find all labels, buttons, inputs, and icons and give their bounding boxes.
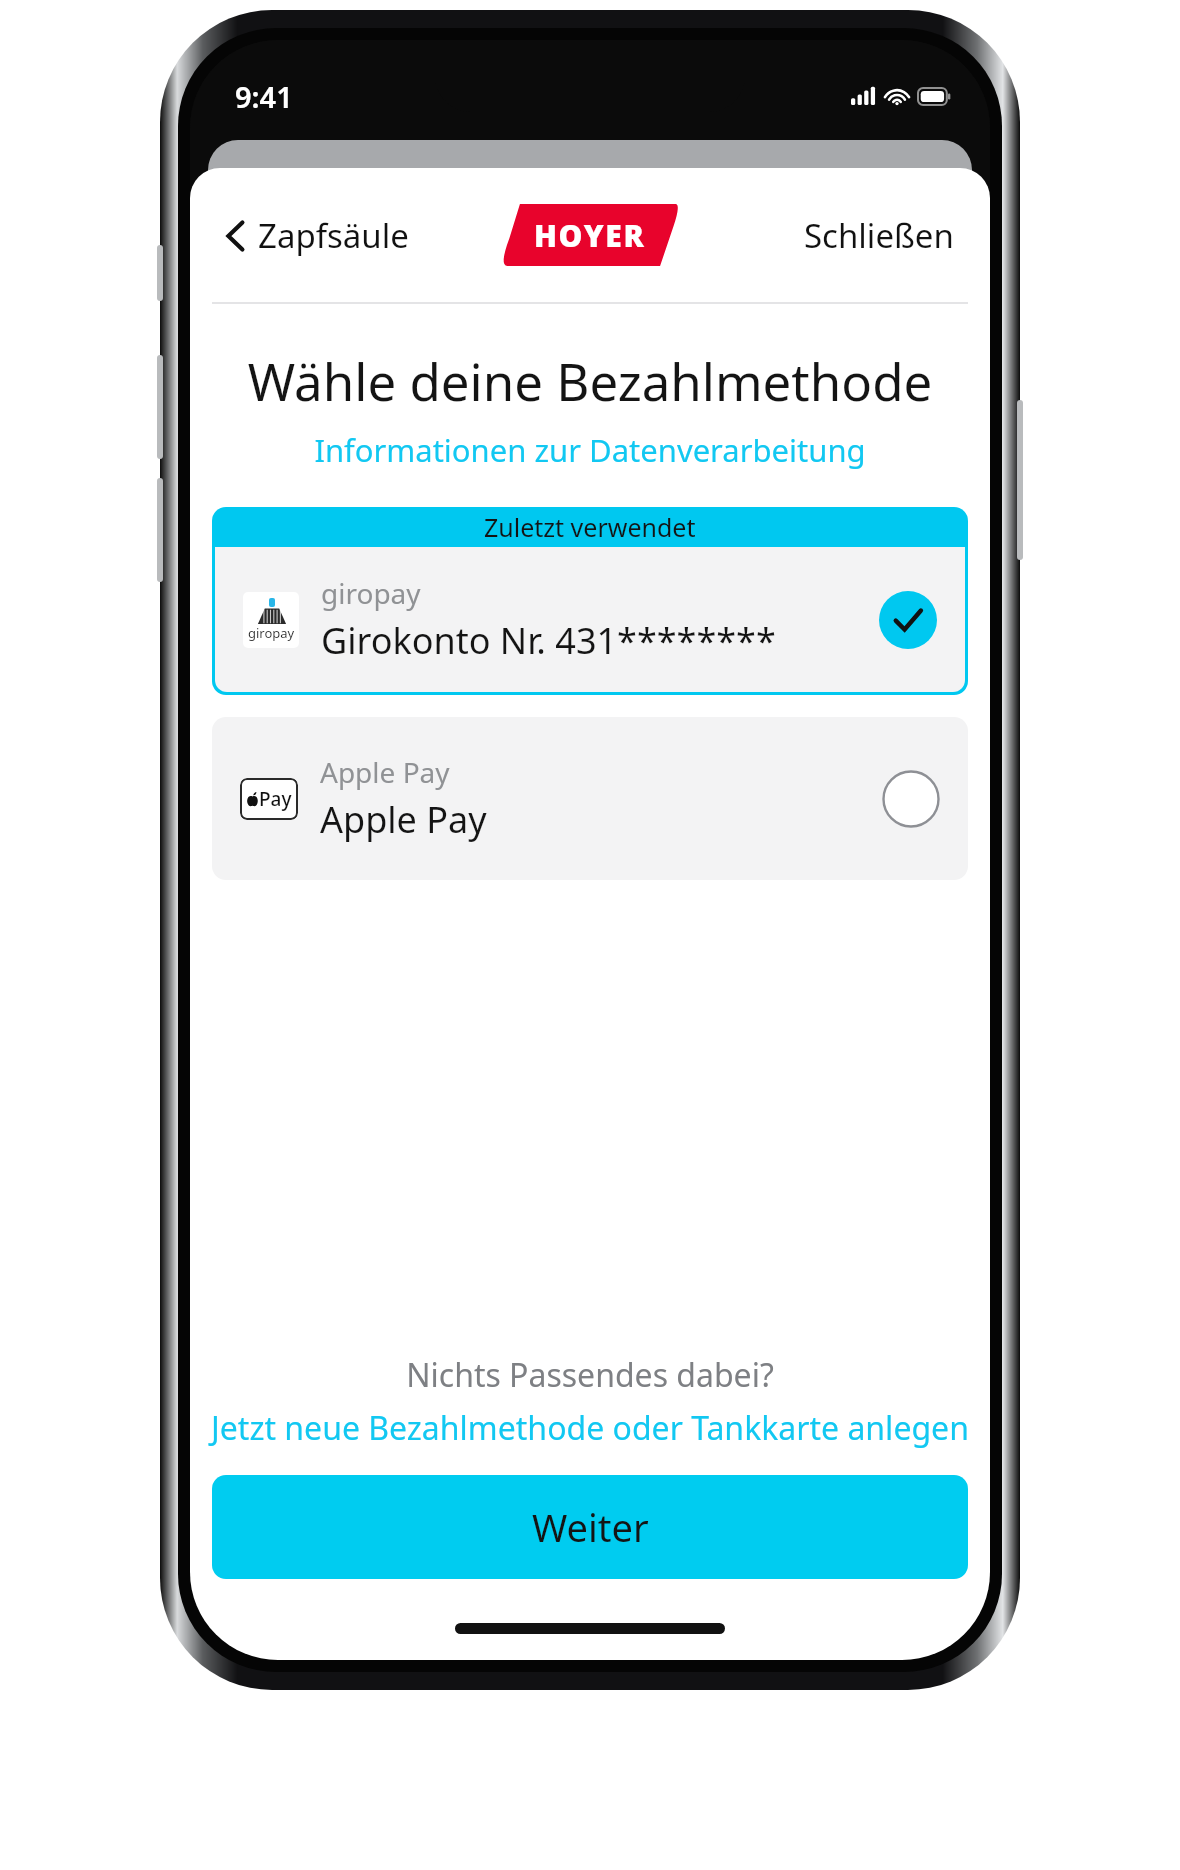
staticText: Schließen (804, 213, 954, 258)
button[interactable]: Informationen zur Datenverarbeitung (308, 425, 872, 475)
staticText: Apple Pay (320, 795, 487, 844)
staticText: Wähle deine Bezahlmethode (190, 346, 990, 415)
staticText: Nichts Passendes dabei? (190, 1353, 990, 1397)
other: Selected (879, 591, 937, 649)
staticText: Girokonto Nr. 431******** (321, 616, 776, 665)
staticText: Zapfsäule (258, 213, 409, 258)
staticText: 9:41 (235, 77, 293, 116)
staticText: HOYER (534, 215, 646, 256)
button[interactable]: Pay (212, 717, 968, 880)
staticText: giropay (248, 624, 295, 642)
button[interactable]: Schließen (792, 203, 966, 268)
staticText: Apple Pay (320, 753, 450, 791)
other: Select Apple Pay (882, 770, 940, 828)
button[interactable]: Weiter (212, 1475, 968, 1579)
button[interactable]: Jetzt neue Bezahlmethode oder Tankkarte … (205, 1403, 975, 1453)
button[interactable]: Zuletzt verwendet (212, 507, 968, 695)
staticText: giropay (321, 574, 421, 612)
button[interactable]: Zapfsäule (214, 203, 421, 268)
staticText: Zuletzt verwendet (484, 510, 696, 544)
staticText: Pay (259, 786, 292, 812)
staticText: Weiter (532, 1501, 649, 1553)
